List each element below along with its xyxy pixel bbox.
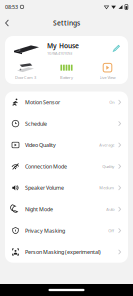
button[interactable]: Night Mode: [5, 198, 128, 220]
staticText: 08:53: [5, 3, 18, 11]
staticText: Medium: [99, 185, 114, 190]
button[interactable]: Schedule: [5, 113, 128, 134]
button[interactable]: Video Quality: [5, 134, 128, 156]
staticText: Quality: [102, 164, 114, 169]
button[interactable]: Motion Sensor: [5, 91, 128, 113]
button[interactable]: Connection Mode: [5, 156, 128, 177]
button[interactable]: Speaker Volume: [5, 177, 128, 198]
staticText: Auto: [106, 206, 114, 212]
staticText: DoorCam 3: [15, 75, 36, 80]
staticText: Off: [108, 228, 114, 233]
staticText: Privacy Masking: [25, 227, 65, 234]
staticText: Speaker Volume: [25, 184, 64, 191]
staticText: Person Masking (experimental): [25, 248, 101, 256]
staticText: My House: [47, 41, 79, 50]
staticText: Battery: [60, 75, 73, 80]
staticText: Schedule: [25, 120, 47, 127]
staticText: On: [109, 99, 114, 105]
staticText: Connection Mode: [25, 163, 67, 170]
staticText: Night Mode: [25, 206, 53, 213]
button[interactable]: Privacy Masking: [5, 220, 128, 241]
staticText: Video Quality: [25, 141, 56, 149]
button[interactable]: DoorCam 3: [5, 62, 46, 80]
staticText: Average: [99, 142, 114, 148]
button[interactable]: Back: [0, 14, 14, 32]
staticText: Live View: [99, 75, 115, 80]
button[interactable]: Live View: [87, 62, 128, 80]
button[interactable]: Edit name: [110, 42, 123, 55]
staticText: Motion Sensor: [25, 99, 60, 106]
button[interactable]: Person Masking (experimental): [5, 241, 128, 263]
button[interactable]: Battery: [46, 62, 87, 80]
staticText: Settings: [53, 19, 80, 27]
staticText: 1078A4101093: [47, 50, 72, 56]
